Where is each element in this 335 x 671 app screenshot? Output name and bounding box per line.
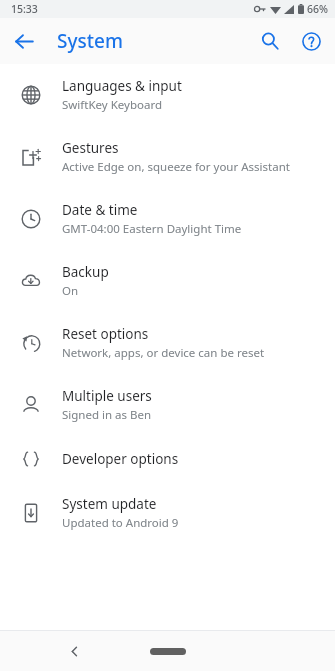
staticText: 66% [307, 2, 328, 16]
staticText: Date & time [62, 201, 138, 219]
staticText: GMT-04:00 Eastern Daylight Time [62, 221, 242, 237]
button[interactable]: Help [293, 23, 329, 59]
button[interactable]: Home [136, 635, 200, 667]
staticText: Network, apps, or device can be reset [62, 345, 265, 361]
staticText: System [57, 28, 123, 54]
staticText: Active Edge on, squeeze for your Assista… [62, 159, 290, 175]
button[interactable]: Developer options [0, 436, 335, 482]
staticText: System update [62, 495, 157, 513]
button[interactable]: Gestures [0, 126, 335, 188]
staticText: SwiftKey Keyboard [62, 97, 162, 113]
button[interactable]: Back [58, 635, 90, 667]
button[interactable]: System update [0, 482, 335, 544]
staticText: Signed in as Ben [62, 407, 152, 423]
staticText: Developer options [62, 450, 179, 468]
button[interactable]: Back [6, 23, 42, 59]
staticText: Gestures [62, 139, 119, 157]
staticText: 15:33 [11, 2, 38, 16]
staticText: Languages & input [62, 77, 182, 95]
staticText: On [62, 283, 79, 299]
button[interactable]: Languages & input [0, 64, 335, 126]
staticText: uantrimang [115, 636, 254, 670]
button[interactable]: Multiple users [0, 374, 335, 436]
button[interactable]: Search [252, 23, 288, 59]
button[interactable]: Backup [0, 250, 335, 312]
button[interactable]: Date & time [0, 188, 335, 250]
staticText: Multiple users [62, 387, 152, 405]
staticText: Backup [62, 263, 109, 281]
button[interactable]: Reset options [0, 312, 335, 374]
staticText: Updated to Android 9 [62, 515, 179, 531]
staticText: Reset options [62, 325, 149, 343]
